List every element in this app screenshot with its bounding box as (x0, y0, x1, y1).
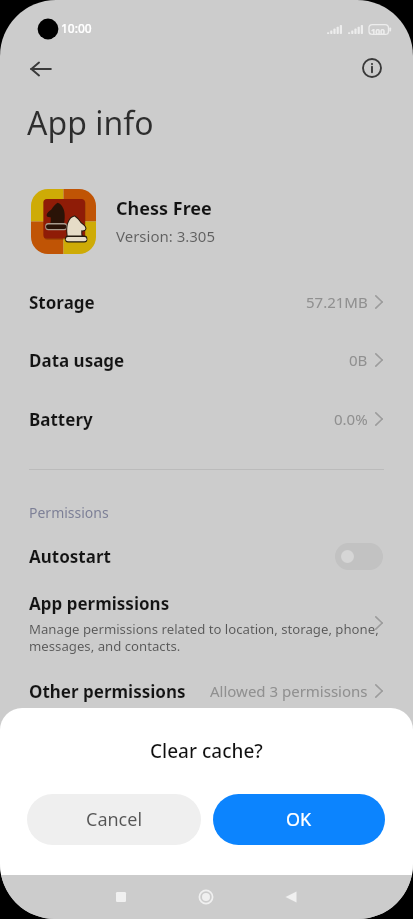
button[interactable]: App permissions (0, 592, 413, 660)
button[interactable]: Back (270, 876, 312, 918)
staticText: Autostart (29, 545, 111, 568)
staticText: Other permissions (29, 680, 186, 703)
staticText: 10:00 (61, 20, 92, 36)
button[interactable]: Battery (0, 399, 413, 439)
staticText: Data usage (29, 349, 125, 372)
staticText: Storage (29, 291, 95, 314)
staticText: OK (286, 807, 312, 832)
button[interactable]: Chess Free (0, 183, 413, 259)
button[interactable]: Autostart (0, 537, 413, 575)
button[interactable]: Home (185, 876, 227, 918)
staticText: Battery (29, 408, 93, 431)
staticText: 0B (349, 350, 368, 370)
staticText: Allowed 3 permissions (210, 681, 368, 701)
staticText: App info (27, 101, 154, 145)
staticText: Chess Free (116, 196, 212, 221)
staticText: Cancel (86, 807, 143, 832)
button[interactable]: Storage (0, 282, 413, 322)
button[interactable]: Back (25, 53, 57, 85)
staticText: Permissions (29, 503, 109, 522)
button[interactable]: Other permissions (0, 671, 413, 711)
staticText: 57.21MB (306, 292, 368, 312)
button[interactable]: Cancel (27, 794, 201, 845)
button[interactable]: Data usage (0, 340, 413, 380)
staticText: 0.0% (334, 409, 368, 429)
staticText: 100 (371, 26, 385, 37)
button[interactable]: App details (356, 52, 388, 84)
staticText: Clear cache? (150, 738, 263, 764)
button[interactable]: Recents (100, 876, 142, 918)
staticText: Version: 3.305 (116, 226, 216, 246)
staticText: App permissions (29, 592, 170, 615)
staticText: Manage permissions related to location, … (29, 620, 379, 655)
button[interactable]: OK (213, 794, 385, 845)
